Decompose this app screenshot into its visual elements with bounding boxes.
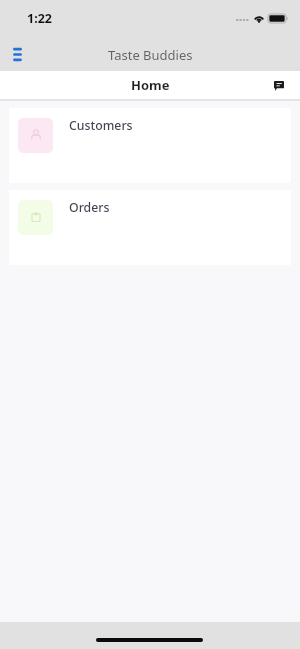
staticText: Home: [131, 76, 170, 94]
staticText: Orders: [69, 199, 110, 216]
button[interactable]: Open navigation menu: [1, 38, 33, 70]
button[interactable]: Orders: [9, 190, 291, 265]
staticText: Customers: [69, 117, 133, 134]
button[interactable]: Customers: [9, 108, 291, 183]
staticText: Taste Buddies: [108, 46, 193, 64]
staticText: 1:22: [27, 10, 52, 27]
button[interactable]: Messages: [268, 75, 290, 97]
